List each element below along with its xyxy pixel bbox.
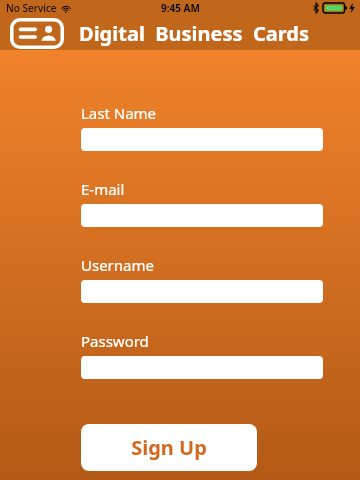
staticText: Digital Business Cards bbox=[79, 20, 310, 47]
staticText: Password bbox=[81, 331, 149, 351]
button[interactable] bbox=[81, 356, 323, 379]
staticText: 9:45 AM bbox=[161, 1, 200, 15]
button[interactable]: Sign Up bbox=[81, 424, 257, 471]
button[interactable] bbox=[81, 280, 323, 303]
other: App icon bbox=[10, 18, 64, 49]
staticText: Username bbox=[81, 255, 154, 275]
staticText: Sign Up bbox=[131, 434, 207, 461]
button[interactable] bbox=[81, 204, 323, 227]
staticText: Last Name bbox=[81, 103, 157, 123]
staticText: No Service bbox=[6, 1, 57, 15]
staticText: E-mail bbox=[81, 179, 125, 199]
button[interactable] bbox=[81, 128, 323, 151]
